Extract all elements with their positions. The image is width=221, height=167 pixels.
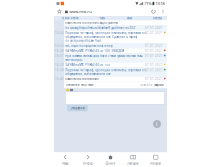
staticText: Закладки bbox=[127, 162, 139, 165]
staticText: по которому обязан был bbox=[65, 39, 101, 42]
staticText: 16:24 bbox=[55, 31, 64, 35]
staticText: обсуждения, всё остальное в чат bbox=[65, 72, 110, 76]
staticText: Назад bbox=[62, 162, 69, 165]
staticText: 07.07.2021 bbox=[145, 49, 163, 53]
staticText: 07.07.2021 bbox=[145, 54, 163, 58]
staticText: правила bbox=[140, 83, 152, 87]
staticText: Вперёд bbox=[83, 162, 93, 165]
staticText: Вкладки bbox=[150, 162, 161, 165]
staticText: 71% bbox=[144, 1, 151, 6]
button[interactable]: Закладки bbox=[122, 152, 144, 167]
button[interactable]: Вкладки bbox=[144, 152, 167, 167]
staticText: МТС ведет на переднем а нас внизу bbox=[65, 44, 112, 47]
staticText: ЗАЧЕМ на МТС РУЖЬЁ 4G со 100 bbox=[65, 63, 110, 67]
staticText: 07.07.2021 bbox=[145, 68, 163, 72]
staticText: www.mts.ru bbox=[69, 9, 91, 14]
button[interactable]: Reload bbox=[148, 7, 159, 16]
staticText: закрыть bbox=[154, 83, 163, 87]
button[interactable]: Вперёд bbox=[77, 152, 99, 167]
staticText: 16:31 bbox=[55, 54, 64, 58]
staticText: Подними тот тариф, где опции отключены, … bbox=[65, 68, 147, 72]
staticText: Какие же вы все великие bbox=[65, 77, 98, 81]
staticText: 07.07.2021 bbox=[145, 63, 163, 67]
staticText: 16:40 bbox=[55, 77, 64, 81]
staticText: Подними тот тариф, где опции отключены, … bbox=[65, 31, 147, 35]
staticText: 16:38 bbox=[55, 68, 64, 72]
staticText: Ну и остаётся же вам да и нас в с теми с… bbox=[65, 54, 142, 58]
button[interactable]: Домой bbox=[99, 152, 122, 167]
button[interactable]: Отправить bbox=[67, 105, 87, 111]
staticText: обсуждения, всё остальное в чат. Сравнил… bbox=[65, 35, 137, 39]
button[interactable]: Info bbox=[153, 120, 161, 128]
staticText: Вся лента bbox=[65, 16, 78, 20]
staticText: i bbox=[156, 120, 158, 128]
staticText: по-моему https://mts.ru/chat/tariff удоб… bbox=[65, 26, 137, 30]
staticText: 13:18 bbox=[155, 1, 164, 6]
staticText: Отправить bbox=[70, 106, 84, 110]
staticText: Чаты bbox=[99, 16, 105, 20]
button[interactable]: Bookmark bbox=[54, 7, 65, 16]
button[interactable]: Назад bbox=[54, 152, 77, 167]
staticText: Тема bbox=[127, 16, 132, 20]
staticText: Какие же вы все великие задротушники bbox=[65, 21, 118, 24]
staticText: 07.07.2021 bbox=[145, 77, 163, 81]
staticText: 16:33 bbox=[55, 63, 64, 67]
staticText: 07.07.2021 bbox=[145, 31, 163, 35]
staticText: этот вопрос bbox=[65, 58, 82, 62]
staticText: 07.07.2021 bbox=[145, 44, 163, 47]
staticText: 16:28 bbox=[55, 49, 64, 53]
staticText: Ответить в этой теме bbox=[66, 83, 93, 87]
staticText: Ответы bbox=[153, 16, 162, 20]
staticText: ЗАЧЕМ на МТС РУЖЬЁ 4G со 100 ЗВЕЗДОЙ bbox=[65, 49, 124, 53]
staticText: Домой bbox=[105, 162, 115, 165]
button[interactable]: More options bbox=[159, 7, 167, 16]
staticText: 16:26 bbox=[55, 44, 64, 47]
staticText: 07.07.2021 bbox=[145, 26, 163, 30]
